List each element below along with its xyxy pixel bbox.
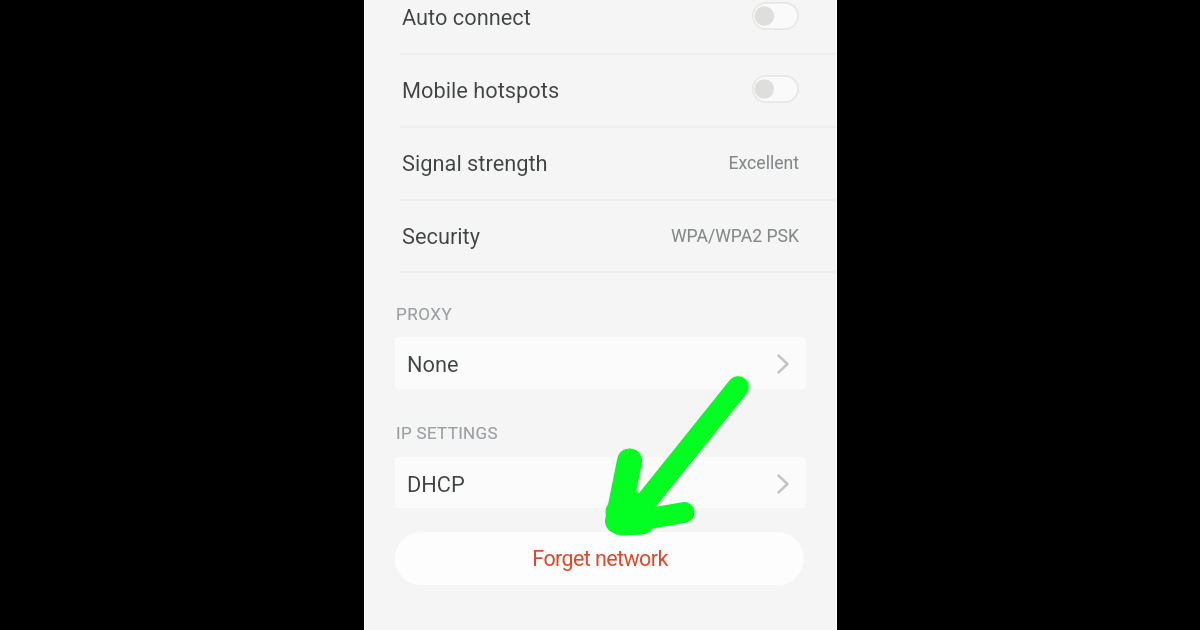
button[interactable] [364, 200, 837, 271]
staticText: PROXY [396, 304, 453, 324]
staticText: Auto connect [402, 5, 531, 31]
button[interactable] [364, 54, 837, 126]
staticText: Mobile hotspots [402, 78, 560, 104]
button[interactable]: DHCP [395, 457, 806, 508]
button[interactable] [364, 127, 837, 199]
staticText: Forget network [532, 546, 668, 571]
button[interactable]: Auto connect [752, 2, 799, 30]
button[interactable] [364, 0, 837, 53]
button[interactable]: None [395, 337, 806, 389]
staticText: None [407, 352, 459, 378]
button[interactable]: Mobile hotspots [752, 75, 799, 103]
staticText: Signal strength [402, 151, 548, 177]
staticText: WPA/WPA2 PSK [670, 226, 799, 247]
button[interactable]: Forget network [395, 532, 804, 585]
staticText: DHCP [407, 472, 465, 498]
staticText: Security [402, 224, 481, 250]
staticText: IP SETTINGS [396, 423, 498, 443]
staticText: Excellent [728, 153, 799, 174]
